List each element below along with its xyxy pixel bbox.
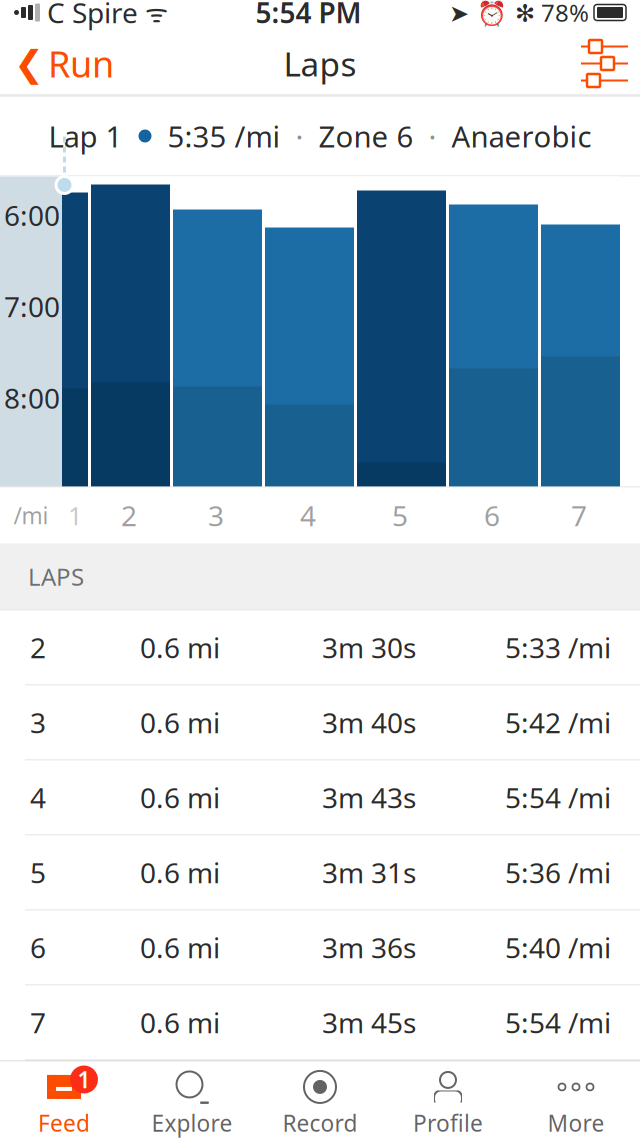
staticText: More xyxy=(547,1108,604,1138)
staticText: 3m 30s xyxy=(322,629,416,666)
staticText: Zone 6 xyxy=(318,116,413,155)
staticText: 0.6 mi xyxy=(140,779,220,816)
staticText: 5 xyxy=(392,497,408,534)
staticText: Lap 1 xyxy=(48,116,122,155)
button[interactable]: Feed xyxy=(0,1061,128,1138)
button[interactable]: 6 xyxy=(0,910,640,985)
button[interactable]: Record xyxy=(256,1061,384,1138)
staticText: ➤ ⏰ ✻ 78% xyxy=(449,0,589,28)
staticText: 0.6 mi xyxy=(140,1004,220,1041)
staticText: LAPS xyxy=(28,561,84,592)
staticText: /mi xyxy=(13,500,48,530)
staticText: Profile xyxy=(413,1108,483,1138)
staticText: Record xyxy=(282,1108,357,1138)
staticText: 6 xyxy=(484,497,500,534)
staticText: 8:00 xyxy=(4,379,60,416)
button[interactable]: 4 xyxy=(0,760,640,835)
staticText: Run xyxy=(48,40,114,87)
staticText: 3m 31s xyxy=(322,854,416,891)
staticText: 0.6 mi xyxy=(140,929,220,966)
staticText: ❮ xyxy=(14,43,44,84)
staticText: 4 xyxy=(30,779,46,816)
button[interactable]: More xyxy=(512,1061,640,1138)
staticText: 5:54 PM xyxy=(255,0,361,31)
staticText: Laps xyxy=(283,41,356,86)
button[interactable]: 3 xyxy=(0,685,640,760)
staticText: 5:33 /mi xyxy=(505,629,611,666)
staticText: 0.6 mi xyxy=(140,704,220,741)
button[interactable]: ❮ xyxy=(0,32,128,94)
staticText: 1 xyxy=(77,1064,90,1094)
button[interactable]: 7 xyxy=(0,985,640,1060)
staticText: 5:40 /mi xyxy=(505,929,611,966)
staticText: 0.6 mi xyxy=(140,854,220,891)
staticText: 6 xyxy=(30,929,46,966)
staticText: 3m 40s xyxy=(322,704,416,741)
button[interactable]: 5 xyxy=(0,835,640,910)
staticText: · xyxy=(428,116,436,155)
button[interactable]: Explore xyxy=(128,1061,256,1138)
staticText: 7 xyxy=(571,497,587,534)
staticText: ᯤ xyxy=(138,0,168,29)
staticText: Anaerobic xyxy=(451,116,591,155)
staticText: C Spire xyxy=(40,0,138,31)
staticText: 3 xyxy=(30,704,46,741)
button[interactable]: Profile xyxy=(384,1061,512,1138)
staticText: Explore xyxy=(151,1108,232,1138)
staticText: 3m 45s xyxy=(322,1004,416,1041)
staticText: 5:35 /mi xyxy=(167,116,280,155)
staticText: Feed xyxy=(38,1108,90,1138)
staticText: 5 xyxy=(30,854,46,891)
staticText: 4 xyxy=(300,497,316,534)
button[interactable]: 2 xyxy=(0,610,640,685)
button[interactable]: Filter xyxy=(569,32,640,94)
staticText: 5:42 /mi xyxy=(505,704,611,741)
staticText: 5:54 /mi xyxy=(505,779,611,816)
staticText: 2 xyxy=(30,629,46,666)
staticText: · xyxy=(295,116,303,155)
staticText: 3 xyxy=(208,497,224,534)
staticText: 7:00 xyxy=(4,288,60,325)
staticText: 3m 43s xyxy=(322,779,416,816)
staticText: 5:36 /mi xyxy=(505,854,611,891)
staticText: 5:54 /mi xyxy=(505,1004,611,1041)
staticText: 1 xyxy=(68,499,82,532)
staticText: 0.6 mi xyxy=(140,629,220,666)
staticText: 2 xyxy=(121,497,137,534)
staticText: 3m 36s xyxy=(322,929,416,966)
staticText: 7 xyxy=(30,1004,46,1041)
staticText: 6:00 xyxy=(4,196,60,234)
